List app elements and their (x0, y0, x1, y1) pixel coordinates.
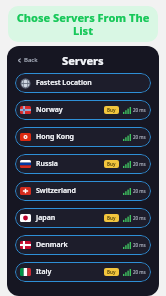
staticText: Italy (36, 267, 52, 277)
button[interactable]: Hong Kong (15, 127, 151, 147)
staticText: 20 ms (133, 215, 146, 221)
staticText: Servers (62, 53, 104, 67)
button[interactable]: Japan (15, 208, 151, 228)
staticText: 20 ms (133, 134, 146, 140)
staticText: Denmark (36, 240, 68, 250)
button[interactable]: Back (15, 55, 40, 65)
staticText: 20 ms (133, 161, 146, 167)
button[interactable]: Italy (15, 262, 151, 282)
staticText: 20 ms (133, 188, 146, 194)
staticText: Back (24, 56, 38, 64)
button[interactable]: Norway (15, 100, 151, 120)
staticText: Buy (107, 161, 116, 167)
staticText: Switzerland (36, 186, 76, 196)
staticText: Japan (36, 213, 56, 223)
staticText: Buy (107, 215, 116, 221)
staticText: 20 ms (133, 107, 146, 113)
staticText: 20 ms (133, 269, 146, 275)
button[interactable]: Denmark (15, 235, 151, 255)
staticText: Norway (36, 105, 63, 115)
staticText: Russia (36, 159, 58, 169)
staticText: Chose Servers From The List (14, 10, 152, 38)
staticText: Hong Kong (36, 132, 74, 142)
staticText: Buy (107, 107, 116, 113)
button[interactable]: Switzerland (15, 181, 151, 201)
staticText: Fastest Location (36, 78, 92, 88)
button[interactable]: Russia (15, 154, 151, 174)
staticText: Buy (107, 269, 116, 275)
button[interactable]: Fastest Location (15, 73, 151, 93)
staticText: 20 ms (133, 242, 146, 248)
